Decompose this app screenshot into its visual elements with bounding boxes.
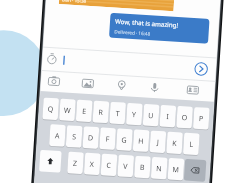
button[interactable]: Messaging app phone mockup (0, 0, 245, 183)
